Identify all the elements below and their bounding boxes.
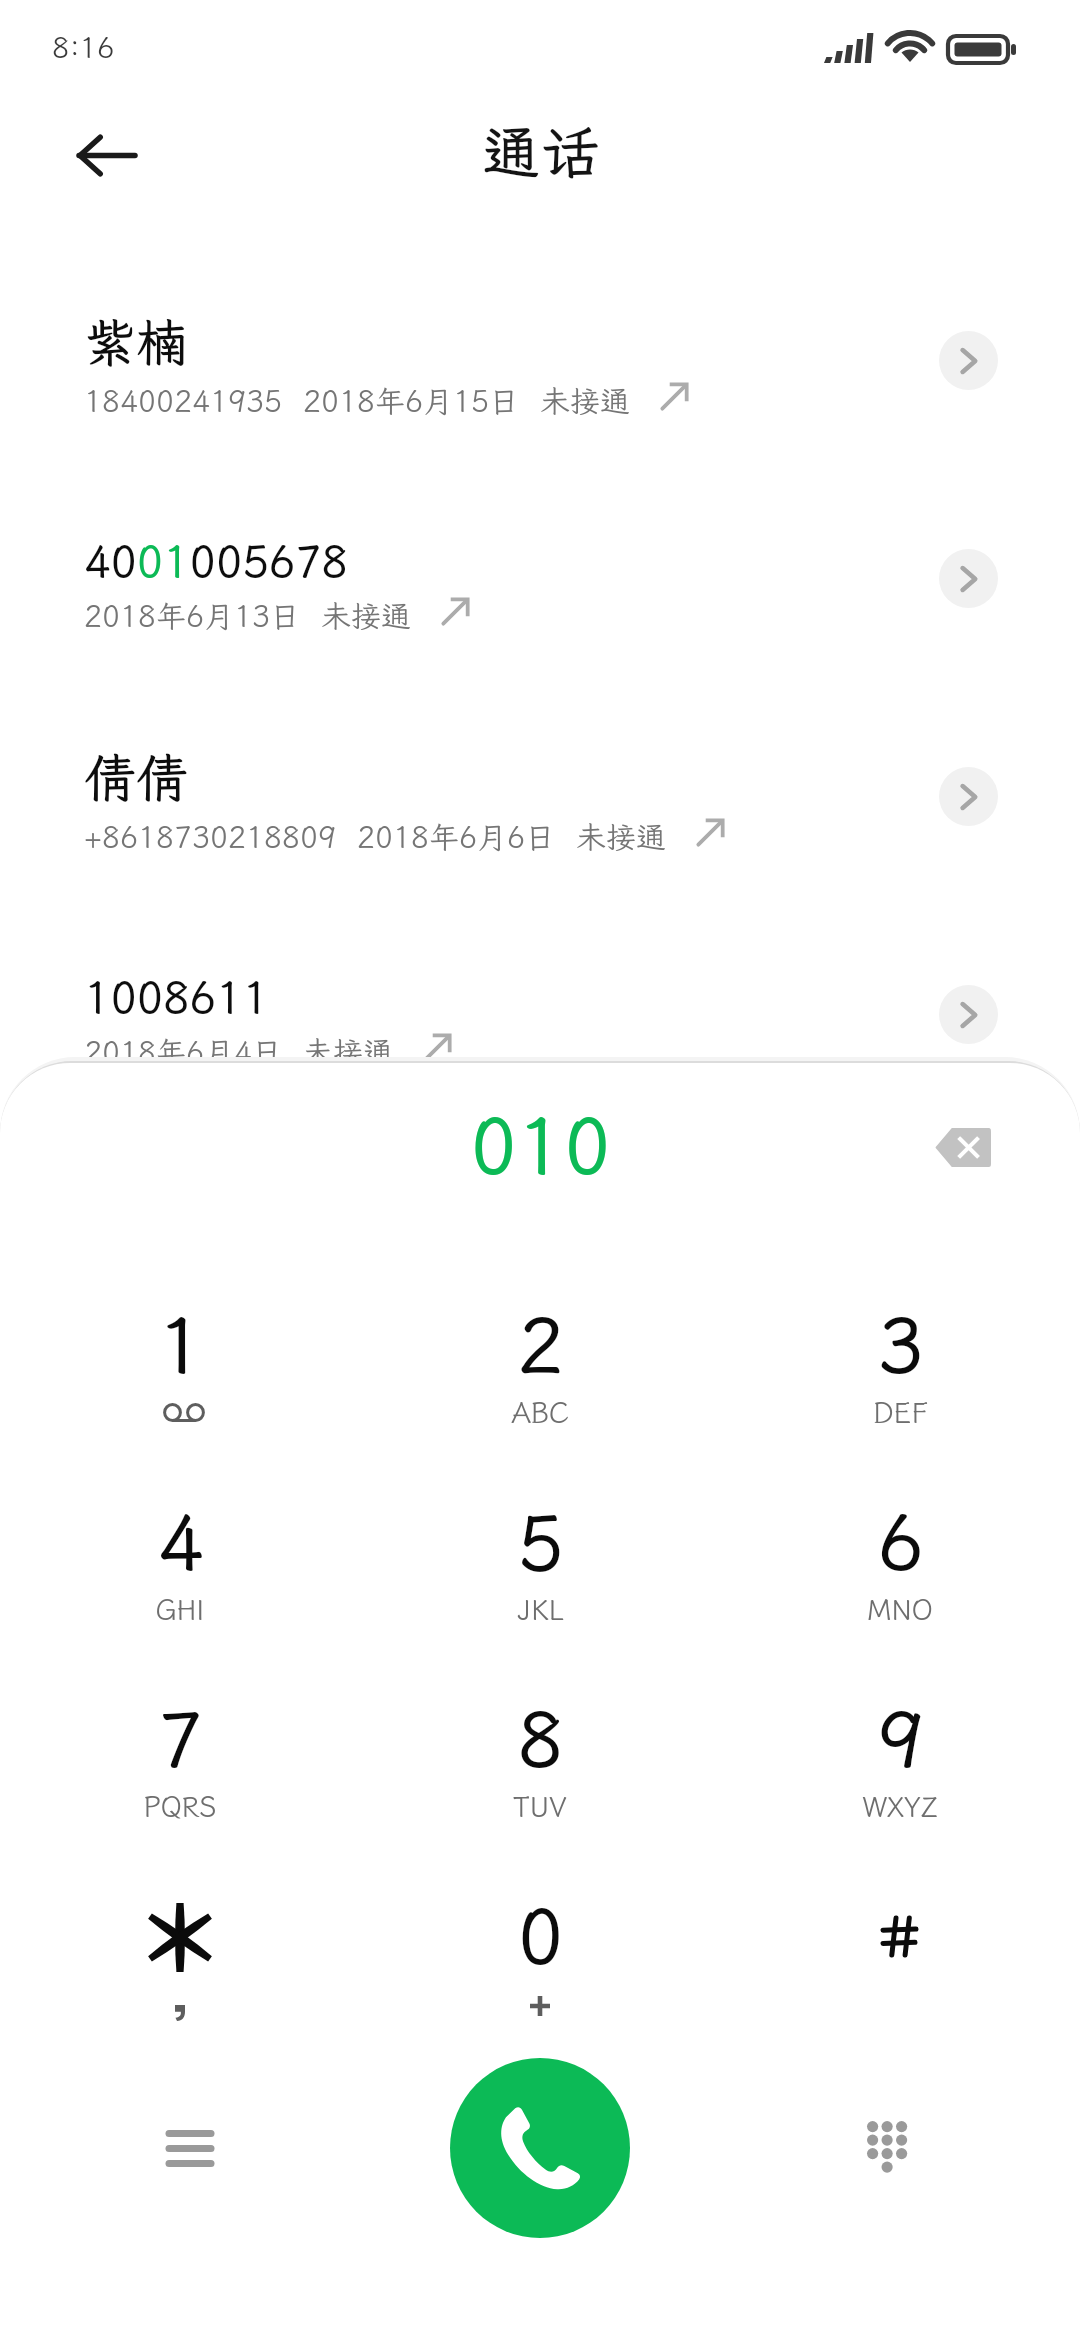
button[interactable]: 1008611 <box>0 933 1080 1083</box>
staticText: 010 <box>470 1094 611 1197</box>
staticText: 5 <box>517 1491 564 1592</box>
staticText: 3 <box>877 1294 924 1395</box>
button[interactable]: 倩倩 <box>0 715 1080 865</box>
staticText: +8618730218809 2018年6月6日 未接通 <box>84 817 666 857</box>
staticText: 7 <box>157 1688 204 1789</box>
staticText: WXYZ <box>862 1788 938 1825</box>
button[interactable]: Call details <box>939 549 998 608</box>
button[interactable]: 2 <box>360 1262 720 1459</box>
button[interactable] <box>720 1853 1080 2050</box>
staticText: TUV <box>513 1788 567 1825</box>
button[interactable]: 紫楠 <box>0 279 1080 429</box>
button[interactable]: Call details <box>939 331 998 390</box>
button[interactable]: Call details <box>939 767 998 826</box>
staticText: 18400241935 2018年6月15日 未接通 <box>84 381 630 421</box>
button[interactable]: 3 <box>720 1262 1080 1459</box>
button[interactable]: 9 <box>720 1656 1080 1853</box>
button[interactable]: 7 <box>0 1656 360 1853</box>
staticText: 6 <box>877 1491 924 1592</box>
staticText: 紫楠 <box>84 307 189 375</box>
staticText: JKL <box>517 1591 564 1628</box>
staticText: MNO <box>867 1591 933 1628</box>
staticText: 4 <box>157 1491 204 1592</box>
staticText: GHI <box>155 1591 205 1628</box>
staticText: 8:16 <box>52 28 115 66</box>
staticText: 2018年6月4日 未接通 <box>84 1032 393 1072</box>
staticText: 0 <box>517 1885 564 1986</box>
button[interactable] <box>0 1853 360 2050</box>
staticText: 1 <box>157 1294 204 1395</box>
staticText: 1008611 <box>84 968 269 1026</box>
button[interactable]: Call log menu <box>135 2093 245 2203</box>
staticText: PQRS <box>143 1788 217 1825</box>
button[interactable]: 5 <box>360 1459 720 1656</box>
button[interactable]: Call details <box>939 985 998 1044</box>
button[interactable]: 4 <box>0 1459 360 1656</box>
button[interactable]: 1 <box>0 1262 360 1459</box>
staticText: 4001005678 <box>84 532 348 590</box>
staticText: 倩倩 <box>84 743 189 811</box>
staticText: 2018年6月13日 未接通 <box>84 596 411 636</box>
button[interactable]: Call <box>450 2058 630 2238</box>
staticText: 8 <box>517 1688 564 1789</box>
staticText: 9 <box>877 1688 924 1789</box>
staticText: 2 <box>517 1294 564 1395</box>
staticText: ABC <box>511 1394 569 1431</box>
button[interactable]: 8 <box>360 1656 720 1853</box>
button[interactable]: 6 <box>720 1459 1080 1656</box>
button[interactable]: Keypad <box>833 2093 943 2203</box>
button[interactable]: Delete <box>908 1092 1018 1202</box>
staticText: DEF <box>873 1394 928 1431</box>
button[interactable]: 4001005678 <box>0 497 1080 647</box>
staticText: 通话 <box>482 113 599 189</box>
button[interactable]: Back <box>48 97 164 213</box>
button[interactable]: 0 <box>360 1853 720 2050</box>
